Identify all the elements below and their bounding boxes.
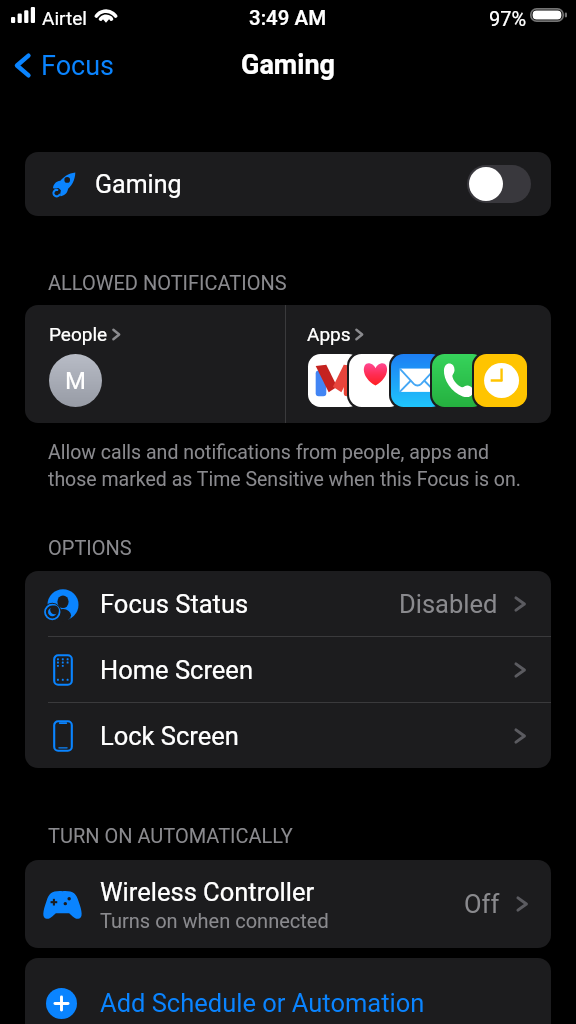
button[interactable]: Focus Status	[25, 571, 551, 636]
staticText: ALLOWED NOTIFICATIONS	[48, 271, 287, 294]
staticText: Add Schedule or Automation	[100, 988, 425, 1018]
staticText: Gaming	[95, 170, 182, 199]
staticText: Turns on when connected	[100, 909, 329, 932]
staticText: Home Screen	[100, 655, 253, 685]
staticText: Lock Screen	[100, 721, 239, 751]
staticText: TURN ON AUTOMATICALLY	[48, 824, 293, 847]
staticText: People	[49, 323, 108, 345]
button[interactable]: Home Screen	[25, 637, 551, 702]
staticText: 97%	[489, 7, 527, 30]
button[interactable]: Lock Screen	[25, 703, 551, 768]
staticText: 3:49 AM	[249, 6, 327, 30]
staticText: Airtel	[42, 7, 87, 29]
button[interactable]: Focus	[11, 49, 114, 82]
staticText: Focus	[41, 50, 114, 82]
staticText: OPTIONS	[48, 536, 132, 559]
button[interactable]: Apps	[286, 305, 551, 423]
button[interactable]: People	[25, 305, 285, 423]
staticText: Allow calls and notifications from peopl…	[48, 441, 534, 490]
button[interactable]: Wireless Controller	[25, 860, 551, 948]
staticText: Wireless Controller	[100, 877, 315, 907]
button[interactable]: Add Schedule or Automation	[25, 958, 551, 1024]
staticText: Off	[464, 889, 500, 919]
staticText: Disabled	[399, 589, 498, 619]
staticText: Gaming	[241, 49, 335, 81]
staticText: Apps	[307, 323, 351, 345]
button[interactable]: Toggle Gaming focus	[467, 165, 531, 203]
staticText: M	[65, 367, 86, 395]
staticText: Focus Status	[100, 589, 249, 619]
